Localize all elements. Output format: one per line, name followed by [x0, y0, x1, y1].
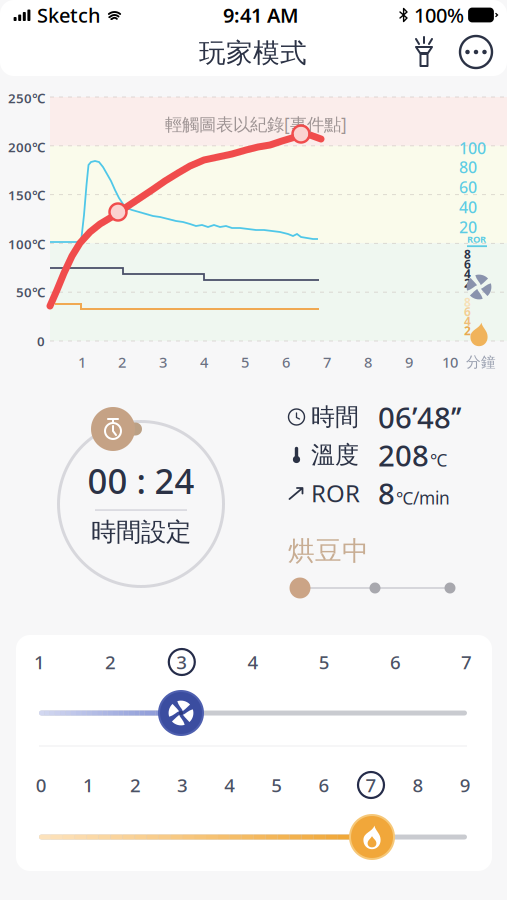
staticText: 時間	[311, 402, 359, 432]
staticText: 1	[78, 352, 86, 372]
button[interactable]: 4	[215, 770, 245, 800]
button[interactable]: 6	[380, 647, 410, 677]
staticText: 時間設定	[91, 516, 191, 548]
staticText: 06’48’’	[378, 397, 461, 436]
button[interactable]: 0	[26, 770, 56, 800]
staticText: 6	[464, 256, 471, 272]
staticText: 100	[459, 137, 486, 159]
staticText: 6	[282, 352, 290, 372]
button[interactable]: 7	[452, 647, 482, 677]
staticText: 6	[390, 650, 401, 674]
staticText: 20	[459, 216, 477, 238]
staticText: 150℃	[8, 186, 45, 204]
staticText: ROR	[467, 233, 486, 245]
staticText: 8	[378, 473, 395, 512]
button[interactable]: 2	[120, 770, 150, 800]
button[interactable]: 8	[403, 770, 433, 800]
staticText: 2	[464, 275, 471, 291]
staticText: 7	[461, 650, 472, 674]
staticText: 溫度	[311, 440, 359, 470]
staticText: 分鐘	[466, 353, 496, 371]
staticText: 1	[34, 650, 45, 674]
staticText: 2	[130, 773, 141, 797]
staticText: 玩家模式	[199, 37, 307, 69]
button[interactable]: 5	[262, 770, 292, 800]
button[interactable]: 6	[309, 770, 339, 800]
staticText: 4	[464, 265, 471, 281]
staticText: Sketch	[32, 2, 106, 28]
staticText: 5	[241, 352, 249, 372]
staticText: 8	[464, 246, 471, 262]
staticText: ℃	[430, 448, 447, 471]
staticText: 6	[464, 303, 471, 319]
staticText: 7	[323, 352, 331, 372]
staticText: 6	[318, 773, 329, 797]
staticText: 2	[105, 650, 116, 674]
staticText: 烘豆中	[288, 535, 369, 567]
staticText: 3	[159, 352, 167, 372]
staticText: 5	[271, 773, 282, 797]
button[interactable]: 4	[238, 647, 268, 677]
staticText: 4	[247, 650, 258, 674]
staticText: 輕觸圖表以紀錄[事件點]	[165, 112, 347, 135]
staticText: 100%	[409, 2, 469, 28]
staticText: 8	[464, 294, 471, 310]
button[interactable]: 1	[73, 770, 103, 800]
button[interactable]: 9	[450, 770, 480, 800]
staticText: 9:41 AM	[223, 2, 299, 28]
staticText: 3	[176, 650, 187, 674]
button[interactable]: 2	[96, 647, 126, 677]
staticText: 7	[365, 773, 376, 797]
staticText: 1	[83, 773, 94, 797]
staticText: 100℃	[8, 235, 45, 253]
button[interactable]: 7	[356, 770, 386, 800]
staticText: ROR	[311, 477, 360, 509]
staticText: 60	[459, 176, 477, 198]
button[interactable]: 3	[168, 770, 198, 800]
button[interactable]: Heat level 7	[348, 813, 396, 861]
staticText: 250℃	[8, 89, 45, 107]
button[interactable]: More options	[455, 31, 497, 73]
staticText: 9	[460, 773, 471, 797]
button[interactable]: 3	[167, 647, 197, 677]
staticText: 40	[459, 196, 477, 218]
button[interactable]: Fan speed 3	[157, 689, 205, 737]
staticText: 208	[378, 435, 429, 474]
staticText: ℃/min	[396, 486, 450, 509]
staticText: 00 : 24	[87, 457, 194, 503]
staticText: 8	[413, 773, 424, 797]
staticText: 10	[442, 352, 458, 372]
button[interactable]: 5	[309, 647, 339, 677]
button[interactable]: 時間設定 00:24	[56, 419, 225, 588]
staticText: 3	[177, 773, 188, 797]
button[interactable]: Flashlight	[405, 33, 443, 71]
staticText: 0	[37, 332, 45, 350]
staticText: 4	[200, 352, 208, 372]
staticText: 200℃	[8, 138, 45, 156]
staticText: 4	[224, 773, 235, 797]
staticText: 2	[464, 322, 471, 338]
staticText: 8	[364, 352, 372, 372]
staticText: 0	[36, 773, 47, 797]
staticText: 2	[118, 352, 126, 372]
staticText: 4	[464, 313, 471, 329]
staticText: 80	[459, 156, 477, 178]
staticText: 9	[405, 352, 413, 372]
staticText: 5	[319, 650, 330, 674]
button[interactable]: 1	[24, 647, 54, 677]
staticText: 50℃	[16, 283, 45, 301]
